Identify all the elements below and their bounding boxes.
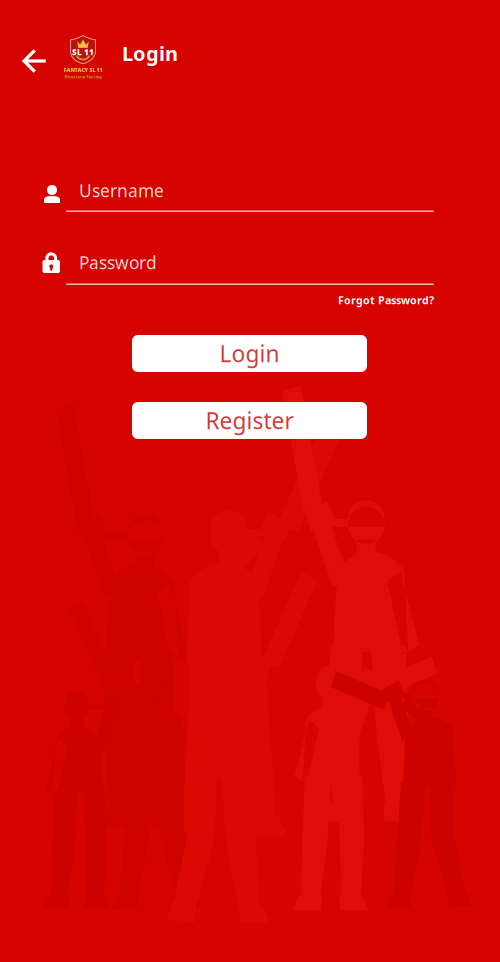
staticText: Username <box>79 179 164 202</box>
button[interactable]: Password <box>42 252 434 292</box>
staticText: FANTACY SL 11 <box>63 66 102 74</box>
staticText: Forgot Password? <box>338 293 434 307</box>
button[interactable]: Username <box>42 182 434 222</box>
staticText: Dhanteras Fantasy <box>64 74 101 79</box>
button[interactable]: Register <box>132 402 367 439</box>
staticText: Register <box>205 405 293 435</box>
button[interactable]: Back <box>12 39 56 83</box>
button[interactable]: Forgot Password? <box>314 291 434 309</box>
staticText: SL 11 <box>72 47 94 57</box>
button[interactable]: Login <box>132 335 367 372</box>
staticText: Login <box>219 338 279 368</box>
staticText: Login <box>122 40 178 67</box>
staticText: Password <box>79 251 157 274</box>
